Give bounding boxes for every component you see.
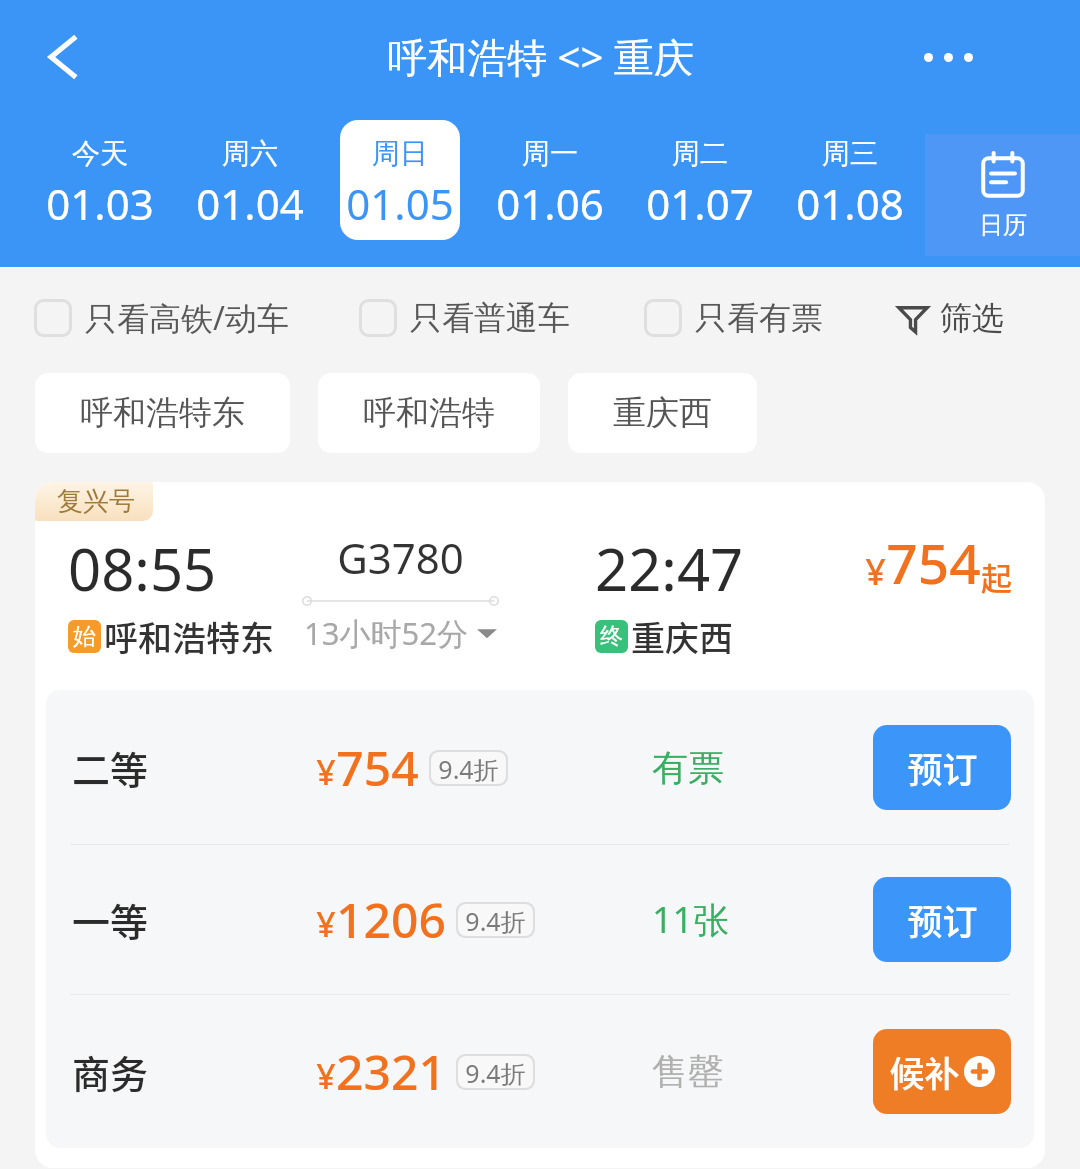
- staticText: 周二: [672, 136, 728, 171]
- staticText: 预订: [907, 894, 978, 945]
- button[interactable]: 只看普通车: [359, 298, 570, 338]
- button[interactable]: 周六: [190, 120, 310, 240]
- button[interactable]: 筛选: [897, 298, 1004, 338]
- staticText: 9.4折: [465, 904, 526, 936]
- staticText: 13小时52分: [304, 612, 468, 654]
- staticText: 候补: [889, 1046, 960, 1097]
- staticText: ¥: [316, 901, 336, 947]
- button[interactable]: 重庆西: [568, 373, 757, 453]
- staticText: 筛选: [940, 298, 1004, 338]
- staticText: 今天: [72, 136, 128, 171]
- staticText: 08:55: [68, 529, 217, 608]
- staticText: 01.06: [496, 175, 604, 232]
- staticText: 复兴号: [57, 485, 135, 518]
- button[interactable]: 周日: [340, 120, 460, 240]
- staticText: 重庆西: [631, 612, 733, 661]
- button[interactable]: 只看高铁/动车: [34, 296, 289, 340]
- staticText: G3780: [337, 529, 464, 586]
- staticText: 日历: [979, 210, 1027, 240]
- button[interactable]: 只看有票: [644, 298, 823, 338]
- button[interactable]: Back: [25, 19, 101, 95]
- staticText: 9.4折: [438, 752, 499, 784]
- staticText: 一等: [72, 892, 316, 947]
- staticText: 01.05: [346, 175, 454, 232]
- staticText: ¥: [316, 1053, 336, 1099]
- button[interactable]: 预订: [873, 877, 1011, 962]
- button[interactable]: More options: [910, 19, 986, 95]
- button[interactable]: 候补: [873, 1029, 1011, 1114]
- button[interactable]: 呼和浩特: [318, 373, 540, 453]
- staticText: 22:47: [595, 529, 744, 608]
- staticText: 终: [600, 622, 623, 651]
- button[interactable]: 今天: [40, 120, 160, 240]
- staticText: 周三: [822, 136, 878, 171]
- staticText: 始: [73, 622, 96, 651]
- staticText: 周日: [372, 136, 428, 171]
- staticText: 01.03: [46, 175, 154, 232]
- staticText: ¥: [316, 749, 336, 795]
- staticText: 二等: [72, 740, 316, 795]
- staticText: 01.07: [646, 175, 754, 232]
- staticText: 只看高铁/动车: [85, 296, 289, 340]
- button[interactable]: 呼和浩特东: [35, 373, 290, 453]
- staticText: 呼和浩特: [363, 392, 495, 434]
- staticText: 754: [886, 525, 981, 600]
- staticText: 有票: [652, 745, 873, 790]
- staticText: 重庆西: [613, 392, 712, 434]
- staticText: 周六: [222, 136, 278, 171]
- staticText: 周一: [522, 136, 578, 171]
- staticText: 售罄: [652, 1049, 873, 1094]
- staticText: 呼和浩特东: [104, 612, 274, 661]
- staticText: 754: [336, 735, 419, 800]
- staticText: 2321: [336, 1039, 446, 1104]
- staticText: 11张: [652, 895, 873, 944]
- button[interactable]: 周二: [640, 120, 760, 240]
- staticText: 01.04: [196, 175, 304, 232]
- staticText: 商务: [72, 1044, 316, 1099]
- staticText: 起: [981, 554, 1012, 599]
- staticText: 只看普通车: [410, 298, 570, 338]
- staticText: 9.4折: [465, 1056, 526, 1088]
- staticText: ¥: [865, 547, 886, 596]
- button[interactable]: Calendar: [925, 134, 1080, 256]
- staticText: 预订: [907, 742, 978, 793]
- button[interactable]: 预订: [873, 725, 1011, 810]
- button[interactable]: 周三: [790, 120, 910, 240]
- staticText: 呼和浩特 <> 重庆: [387, 29, 694, 84]
- staticText: 只看有票: [695, 298, 823, 338]
- staticText: 1206: [336, 887, 446, 952]
- staticText: 呼和浩特东: [80, 392, 245, 434]
- staticText: 01.08: [796, 175, 904, 232]
- button[interactable]: 周一: [490, 120, 610, 240]
